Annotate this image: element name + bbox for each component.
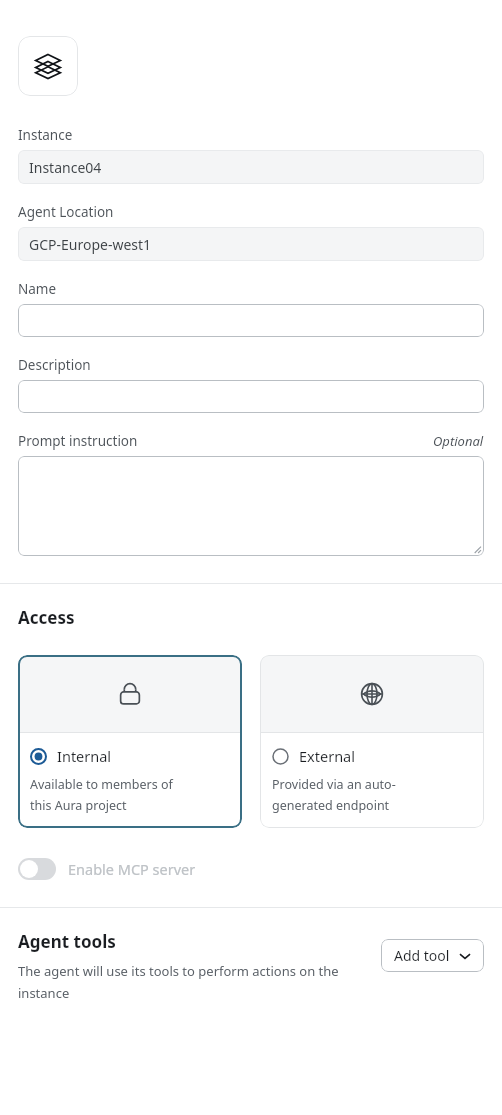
- staticText: The agent will use its tools to perform …: [18, 962, 339, 980]
- button[interactable]: Instance04: [18, 150, 484, 184]
- staticText: Internal: [57, 746, 112, 766]
- staticText: generated endpoint: [272, 797, 390, 814]
- button[interactable]: [18, 380, 484, 413]
- staticText: GCP-Europe-west1: [29, 235, 152, 254]
- button[interactable]: Internal: [18, 655, 242, 828]
- staticText: Add tool: [394, 946, 450, 965]
- staticText: Optional: [433, 432, 484, 450]
- staticText: Available to members of: [30, 776, 173, 793]
- staticText: Provided via an auto-: [272, 776, 396, 793]
- button[interactable]: [18, 304, 484, 337]
- staticText: Enable MCP server: [68, 859, 196, 879]
- staticText: External: [299, 746, 355, 766]
- staticText: Agent Location: [18, 203, 114, 221]
- staticText: Instance04: [29, 158, 102, 177]
- button[interactable]: Instance layers: [18, 36, 78, 96]
- staticText: Name: [18, 280, 57, 298]
- staticText: instance: [18, 984, 70, 1002]
- button[interactable]: External: [260, 655, 484, 828]
- button[interactable]: Enable MCP server: [18, 858, 484, 880]
- staticText: Instance: [18, 126, 73, 144]
- button[interactable]: GCP-Europe-west1: [18, 227, 484, 261]
- staticText: this Aura project: [30, 797, 127, 814]
- staticText: Prompt instruction: [18, 432, 138, 450]
- button[interactable]: [18, 456, 484, 556]
- staticText: Agent tools: [18, 930, 116, 953]
- staticText: Description: [18, 356, 91, 374]
- button[interactable]: Add tool: [381, 939, 484, 972]
- staticText: Access: [18, 606, 75, 629]
